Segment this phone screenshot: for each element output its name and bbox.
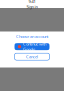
button[interactable]: Cancel <box>14 53 49 60</box>
staticText: Choose an account <box>16 34 48 39</box>
button[interactable]: Continue with Google <box>14 43 49 50</box>
staticText: 9:41 <box>28 0 35 4</box>
staticText: Cancel <box>26 54 38 59</box>
staticText: Continue with Google <box>23 41 46 52</box>
staticText: Sign in <box>26 4 37 9</box>
